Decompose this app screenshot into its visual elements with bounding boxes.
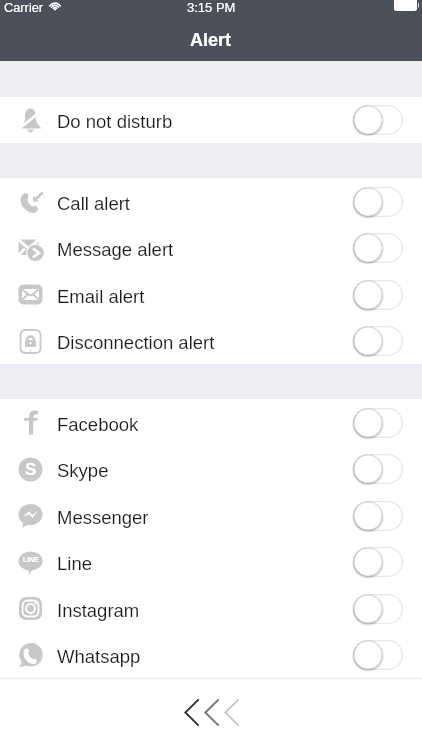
button[interactable]: Toggle: [353, 187, 403, 217]
staticText: Skype: [57, 460, 109, 481]
staticText: Instagram: [57, 600, 140, 621]
button[interactable]: Toggle: [353, 326, 403, 356]
button[interactable]: Toggle: [353, 547, 403, 577]
button[interactable]: Disconnection alert: [0, 318, 422, 364]
staticText: LINE: [23, 556, 39, 564]
staticText: Call alert: [57, 193, 130, 214]
staticText: Facebook: [57, 414, 139, 435]
staticText: Disconnection alert: [57, 332, 215, 353]
staticText: Email alert: [57, 286, 145, 307]
staticText: 3:15 PM: [187, 0, 236, 15]
button[interactable]: Messenger: [0, 492, 422, 539]
button[interactable]: LINE: [0, 539, 422, 585]
button[interactable]: Back: [204, 698, 220, 727]
button[interactable]: Facebook: [0, 399, 422, 446]
staticText: Carrier: [4, 0, 44, 14]
button[interactable]: S: [0, 446, 422, 492]
staticText: Line: [57, 553, 92, 574]
button[interactable]: Toggle: [353, 454, 403, 484]
button[interactable]: Toggle: [353, 594, 403, 624]
button[interactable]: Back: [184, 698, 200, 727]
staticText: Alert: [190, 30, 232, 50]
button[interactable]: Toggle: [353, 501, 403, 531]
button[interactable]: Email alert: [0, 271, 422, 318]
staticText: Messenger: [57, 507, 149, 528]
button[interactable]: Message alert: [0, 225, 422, 271]
button[interactable]: Toggle: [353, 233, 403, 263]
staticText: S: [25, 460, 37, 479]
button[interactable]: Do not disturb: [0, 97, 422, 143]
button[interactable]: Toggle: [353, 105, 403, 135]
button[interactable]: Instagram: [0, 585, 422, 632]
staticText: Do not disturb: [57, 111, 173, 132]
staticText: Message alert: [57, 239, 174, 260]
button[interactable]: Whatsapp: [0, 632, 422, 678]
button[interactable]: Back: [224, 698, 240, 727]
staticText: Whatsapp: [57, 646, 141, 667]
button[interactable]: Toggle: [353, 408, 403, 438]
button[interactable]: Call alert: [0, 178, 422, 225]
button[interactable]: Toggle: [353, 640, 403, 670]
button[interactable]: Toggle: [353, 280, 403, 310]
